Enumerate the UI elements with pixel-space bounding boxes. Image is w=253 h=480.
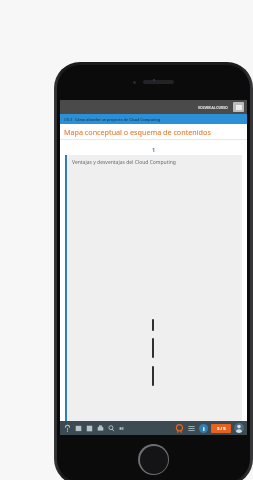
button[interactable]: Notes bbox=[86, 425, 93, 432]
staticText: 3 / 5 bbox=[217, 426, 226, 432]
button[interactable]: UD.3 bbox=[60, 114, 247, 124]
staticText: i bbox=[203, 425, 205, 432]
staticText: UD.3 bbox=[64, 117, 75, 122]
staticText: VOLVER AL CURSO bbox=[198, 105, 228, 110]
button[interactable]: Achievements bbox=[175, 424, 184, 433]
staticText: Cómo abordar un proyecto de Cloud Comput… bbox=[75, 117, 161, 122]
button[interactable]: Profile bbox=[234, 423, 244, 433]
button[interactable]: Menu bbox=[233, 102, 244, 112]
button[interactable]: Ventajas y desventajas del Cloud Computi… bbox=[65, 155, 242, 421]
staticText: Mapa conceptual o esquema de contenidos bbox=[64, 127, 211, 137]
button[interactable]: Print bbox=[97, 425, 104, 432]
button[interactable]: Sound bbox=[119, 425, 126, 432]
button[interactable]: Index bbox=[187, 424, 196, 433]
button[interactable]: Home bbox=[138, 444, 169, 475]
button[interactable]: 3 / 5 bbox=[211, 424, 231, 433]
button[interactable]: VOLVER AL CURSO bbox=[196, 103, 230, 112]
button[interactable]: Help bbox=[64, 425, 71, 432]
button[interactable]: Information bbox=[199, 424, 208, 433]
button[interactable]: Bookmark bbox=[75, 425, 82, 432]
button[interactable]: Search bbox=[108, 425, 115, 432]
staticText: Ventajas y desventajas del Cloud Computi… bbox=[72, 159, 176, 166]
staticText: 1 bbox=[152, 146, 156, 153]
